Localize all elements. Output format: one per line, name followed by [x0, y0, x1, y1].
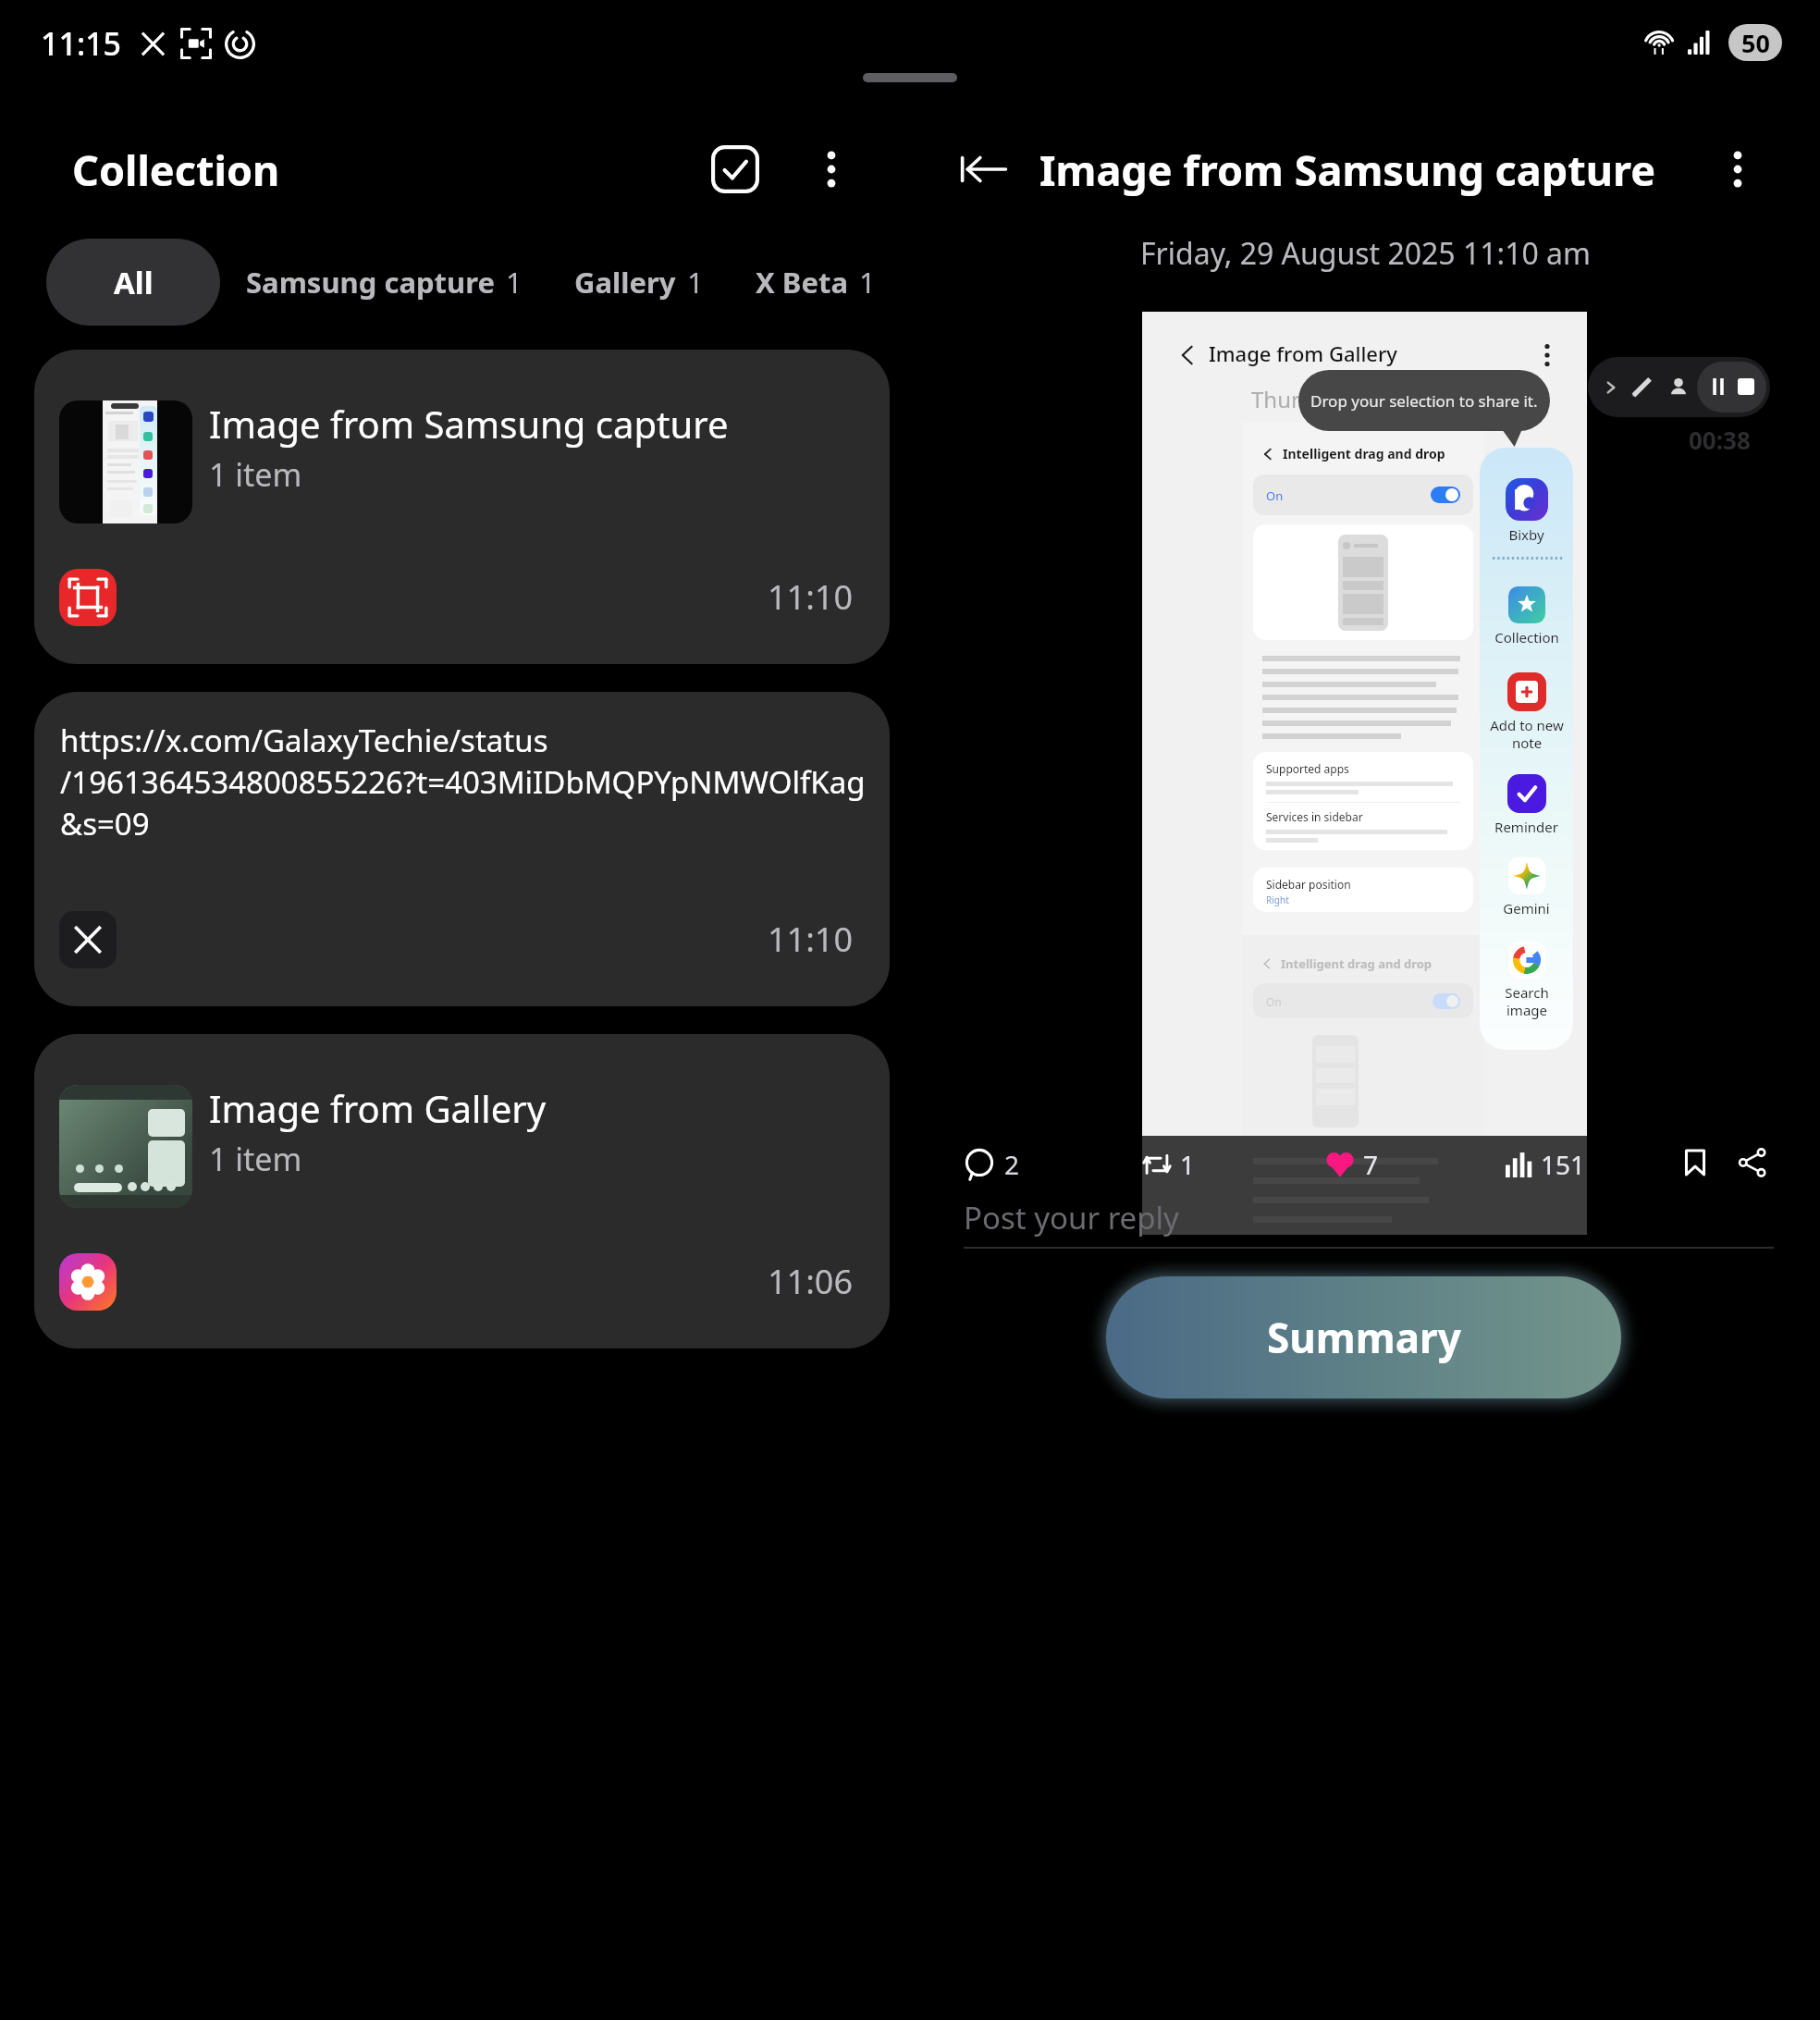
staticText: On — [1266, 487, 1284, 504]
staticText: 7 — [1363, 1147, 1379, 1182]
staticText: X Beta — [756, 263, 848, 302]
staticText: Collection — [72, 142, 280, 198]
button[interactable]: Select items — [699, 133, 771, 205]
button[interactable]: Back — [947, 133, 1019, 205]
staticText: Gemini — [1503, 899, 1550, 918]
staticText: Post your reply — [964, 1197, 1179, 1238]
staticText: 11:10 — [768, 574, 854, 620]
staticText: 151 — [1541, 1147, 1586, 1182]
staticText: Intelligent drag and drop — [1283, 445, 1445, 462]
staticText: Collection — [1494, 628, 1559, 647]
staticText: Image from Gallery — [1209, 339, 1397, 367]
staticText: Friday, 29 August 2025 11:10 am — [1140, 233, 1591, 274]
button[interactable]: Post your reply — [964, 1191, 1774, 1243]
staticText: Samsung capture — [246, 263, 495, 302]
button[interactable]: All — [46, 239, 220, 326]
staticText: Summary — [1267, 1310, 1461, 1365]
button[interactable]: Recording controls — [1588, 357, 1770, 417]
button[interactable]: Repost — [1141, 1147, 1196, 1182]
staticText: Intelligent drag and drop — [1281, 955, 1433, 972]
staticText: Reminder — [1494, 818, 1558, 836]
button[interactable]: Like — [1326, 1147, 1379, 1182]
staticText: 00:38 — [1689, 424, 1751, 456]
staticText: 11:10 — [768, 917, 854, 962]
button[interactable]: Gallery — [548, 239, 730, 326]
staticText: 11:06 — [768, 1259, 854, 1304]
button[interactable]: Samsung capture — [220, 239, 548, 326]
staticText: Search image — [1505, 983, 1549, 1019]
staticText: Image from Gallery — [209, 1083, 547, 1133]
button[interactable]: Image from Samsung capture — [34, 350, 890, 664]
staticText: Add to new note — [1490, 716, 1564, 752]
staticText: 1 — [859, 263, 876, 302]
staticText: Image from Samsung capture — [209, 399, 729, 449]
button[interactable]: Reminder — [1480, 774, 1573, 836]
staticText: Right — [1266, 893, 1289, 906]
staticText: Services in sidebar — [1266, 809, 1363, 824]
staticText: 11:15 — [41, 22, 122, 65]
staticText: Thursd — [1251, 384, 1325, 414]
staticText: On — [1266, 994, 1282, 1009]
staticText: 50 — [1741, 26, 1770, 60]
button[interactable]: Image from Gallery — [34, 1034, 890, 1349]
staticText: 1 — [687, 263, 704, 302]
button[interactable]: Views — [1506, 1147, 1586, 1182]
staticText: 1 item — [209, 1138, 302, 1180]
staticText: Drop your selection to share it. — [1310, 390, 1538, 412]
button[interactable]: https://x.com/GalaxyTechie/status — [34, 692, 890, 1006]
button[interactable]: Add to new note — [1480, 672, 1573, 752]
button[interactable]: Gemini — [1480, 857, 1573, 918]
staticText: 1 item — [209, 453, 302, 496]
button[interactable]: More options — [1702, 133, 1774, 205]
staticText: /1961364534800855226?t=403MiIDbMQPYpNMWO… — [60, 761, 866, 803]
button[interactable]: Summary — [1106, 1276, 1621, 1398]
staticText: Sidebar position — [1266, 877, 1351, 892]
staticText: All — [114, 262, 154, 303]
button[interactable]: Bixby — [1480, 478, 1573, 544]
button[interactable]: Collection — [1480, 586, 1573, 647]
staticText: &s=09 — [60, 803, 150, 844]
staticText: 1 — [1180, 1147, 1196, 1182]
staticText: 2 — [1004, 1147, 1020, 1182]
staticText: Bixby — [1508, 525, 1544, 544]
staticText: 1 — [506, 263, 523, 302]
button[interactable]: Search image — [1480, 942, 1573, 1019]
staticText: Gallery — [574, 263, 676, 302]
button[interactable]: Share — [1737, 1147, 1770, 1180]
staticText: Supported apps — [1266, 761, 1349, 776]
button[interactable]: Reply — [964, 1147, 1020, 1182]
button[interactable]: X Beta — [730, 239, 902, 326]
button[interactable]: Bookmark — [1679, 1147, 1713, 1180]
staticText: https://x.com/GalaxyTechie/status — [60, 720, 548, 761]
button[interactable]: More options — [795, 133, 867, 205]
staticText: Image from Samsung capture — [1039, 142, 1656, 198]
